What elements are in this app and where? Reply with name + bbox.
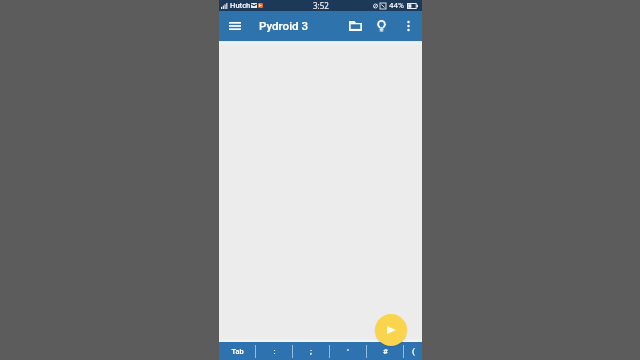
staticText: ( <box>412 347 415 356</box>
staticText: ' <box>347 347 349 356</box>
staticText: # <box>383 347 388 356</box>
button[interactable]: ( <box>404 342 422 360</box>
staticText: Tab <box>231 347 244 356</box>
staticText: Hutch <box>230 1 251 10</box>
staticText: Pydroid 3 <box>259 19 309 33</box>
staticText: 44% <box>389 1 404 10</box>
button[interactable]: Hints <box>368 11 395 41</box>
button[interactable]: Tab <box>219 342 255 360</box>
staticText: 3:52 <box>313 0 329 11</box>
button[interactable]: ; <box>293 342 329 360</box>
button[interactable]: Open file <box>343 11 368 41</box>
button[interactable]: Run <box>375 314 407 346</box>
staticText: : <box>273 347 276 356</box>
button[interactable]: Navigation menu <box>219 11 251 41</box>
staticText: ; <box>310 347 312 356</box>
button[interactable]: : <box>256 342 292 360</box>
button[interactable]: ' <box>330 342 366 360</box>
button[interactable]: # <box>367 342 403 360</box>
button[interactable]: More options <box>395 11 422 41</box>
